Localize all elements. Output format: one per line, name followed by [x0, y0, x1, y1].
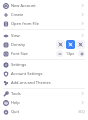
button[interactable]: Font Size [0, 49, 88, 58]
staticText: ⌘Q [78, 109, 85, 114]
button[interactable]: Density option [76, 40, 85, 49]
staticText: Account Settings [11, 71, 43, 76]
staticText: Settings [11, 62, 27, 67]
button[interactable]: Add-ons and Themes [0, 78, 88, 87]
button[interactable]: Increase font size [78, 50, 85, 57]
button[interactable]: Open from File [0, 19, 88, 28]
staticText: Quit [11, 109, 20, 114]
staticText: Create [11, 12, 24, 17]
staticText: View [11, 33, 20, 38]
button[interactable]: Quit [0, 107, 88, 116]
button[interactable]: Settings [0, 60, 88, 69]
staticText: Help [11, 100, 20, 105]
staticText: Add-ons and Themes [11, 80, 51, 85]
button[interactable]: Density option [56, 40, 65, 49]
staticText: Open from File [11, 21, 39, 26]
staticText: Tools [11, 91, 21, 96]
button[interactable]: Create [0, 10, 88, 19]
staticText: Font Size [11, 51, 28, 56]
staticText: New Account [11, 3, 36, 8]
button[interactable]: Tools [0, 89, 88, 98]
staticText: 13px [66, 51, 75, 56]
staticText: Density [11, 42, 26, 47]
button[interactable]: New Account [0, 1, 88, 10]
button[interactable]: Decrease font size [56, 50, 63, 57]
button[interactable]: Help [0, 98, 88, 107]
button[interactable]: Density option [66, 40, 75, 49]
button[interactable]: View [0, 31, 88, 40]
button[interactable]: Density [0, 40, 88, 49]
button[interactable]: Account Settings [0, 69, 88, 78]
